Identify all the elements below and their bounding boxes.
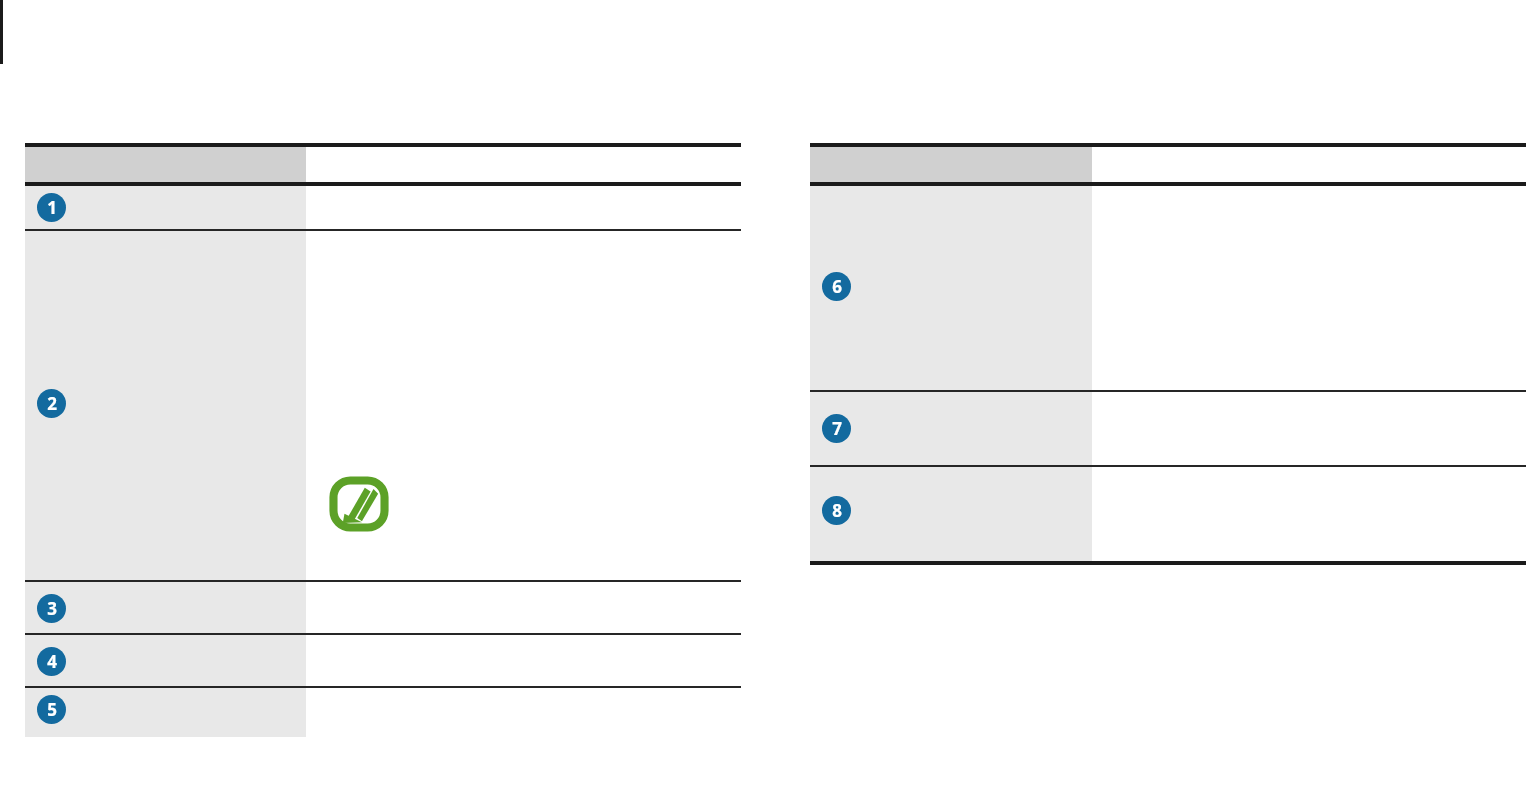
staticText: 7	[832, 417, 842, 440]
staticText: 1	[47, 196, 57, 219]
button[interactable]: 1	[37, 193, 66, 222]
button[interactable]: 4	[37, 647, 66, 676]
staticText: 4	[47, 650, 57, 673]
staticText: 5	[47, 698, 57, 721]
staticText: 6	[832, 275, 842, 298]
button[interactable]: 3	[37, 594, 66, 623]
button[interactable]: 7	[822, 414, 851, 443]
button[interactable]: Memo	[330, 477, 388, 531]
button[interactable]: 5	[37, 695, 66, 724]
staticText: 3	[47, 597, 57, 620]
button[interactable]: 8	[822, 496, 851, 525]
staticText: 2	[47, 392, 57, 415]
button[interactable]: 2	[37, 389, 66, 418]
staticText: 8	[832, 499, 842, 522]
button[interactable]: 6	[822, 272, 851, 301]
